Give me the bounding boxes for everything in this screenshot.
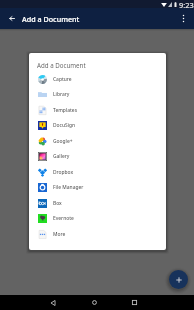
button[interactable]: More options	[173, 8, 194, 29]
staticText: Library	[53, 91, 70, 98]
button[interactable]: Google+	[29, 134, 166, 149]
button[interactable]: DocuSign	[29, 118, 166, 133]
button[interactable]: Capture	[29, 72, 166, 87]
button[interactable]: Back	[33, 295, 73, 310]
button[interactable]: Box	[29, 196, 166, 211]
staticText: Templates	[53, 107, 78, 114]
staticText: Gallery	[53, 153, 70, 160]
button[interactable]: Dropbox	[29, 165, 166, 180]
staticText: Add a Document	[22, 14, 80, 24]
staticText: Add a Document	[37, 61, 86, 69]
staticText: Google+	[53, 138, 73, 145]
button[interactable]: Add	[169, 270, 188, 289]
button[interactable]: Home	[74, 295, 114, 310]
staticText: 9:23	[179, 0, 194, 8]
staticText: More	[53, 231, 66, 238]
staticText: DocuSign	[53, 122, 76, 129]
staticText: Box	[53, 200, 62, 207]
button[interactable]: Library	[29, 87, 166, 102]
button[interactable]: Back	[0, 8, 22, 29]
button[interactable]: Gallery	[29, 149, 166, 164]
staticText: Evernote	[53, 215, 74, 222]
staticText: Capture	[53, 76, 72, 83]
button[interactable]: Templates	[29, 103, 166, 118]
staticText: File Manager	[53, 184, 84, 191]
button[interactable]: Recents	[114, 295, 154, 310]
button[interactable]: More	[29, 227, 166, 242]
staticText: Dropbox	[53, 169, 74, 176]
button[interactable]: File Manager	[29, 180, 166, 195]
button[interactable]: Evernote	[29, 211, 166, 226]
